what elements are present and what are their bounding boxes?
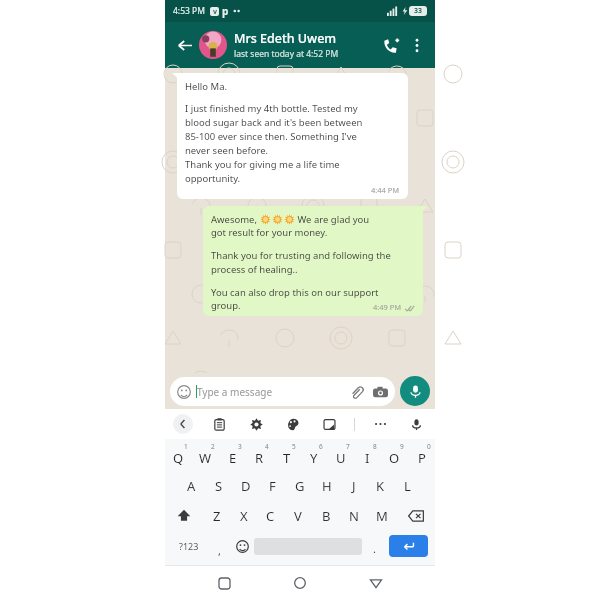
button[interactable]: Resize — [318, 413, 340, 435]
button[interactable]: N — [340, 501, 368, 531]
button[interactable]: Emoji — [230, 531, 254, 561]
button[interactable]: Enter — [389, 535, 428, 557]
button[interactable]: Hello Ma. — [177, 73, 408, 199]
button[interactable]: Call — [377, 31, 405, 59]
button[interactable]: C — [257, 501, 284, 531]
staticText: 1 — [184, 442, 188, 451]
staticText: Type a message — [197, 385, 273, 399]
button[interactable]: Back — [359, 566, 393, 600]
button[interactable]: E — [219, 441, 246, 471]
button[interactable]: L — [394, 471, 421, 501]
staticText: Mrs Edeth Uwem — [234, 30, 337, 47]
button[interactable]: U — [327, 441, 354, 471]
button[interactable]: X — [230, 501, 257, 531]
staticText: Y — [310, 449, 318, 467]
staticText: got result for your money. — [211, 226, 328, 239]
staticText: 2 — [211, 442, 215, 451]
button[interactable]: Mrs Edeth Uwem — [234, 30, 377, 60]
staticText: K — [376, 477, 385, 495]
button[interactable]: ?123 — [169, 531, 209, 561]
button[interactable]: More — [369, 413, 391, 435]
staticText: B — [322, 507, 331, 525]
staticText: Thank you for trusting and following the… — [211, 249, 391, 276]
button[interactable]: Attach — [348, 384, 364, 400]
staticText: N — [349, 507, 359, 525]
staticText: C — [266, 507, 275, 525]
staticText: W — [199, 449, 212, 467]
button[interactable]: Q — [165, 441, 192, 471]
button[interactable]: Settings — [245, 413, 267, 435]
button[interactable]: V — [284, 501, 312, 531]
staticText: 9 — [400, 442, 404, 451]
button[interactable]: S — [205, 471, 232, 501]
button[interactable]: F — [259, 471, 286, 501]
button[interactable]: M — [368, 501, 396, 531]
button[interactable]: Home — [283, 566, 317, 600]
button[interactable]: W — [192, 441, 219, 471]
button[interactable]: B — [312, 501, 340, 531]
button[interactable]: J — [340, 471, 367, 501]
button[interactable]: Voice input — [405, 413, 427, 435]
staticText: p — [222, 4, 229, 18]
staticText: Q — [173, 449, 184, 467]
button[interactable]: K — [367, 471, 394, 501]
staticText: E — [229, 449, 237, 467]
button[interactable]: R — [246, 441, 273, 471]
button[interactable]: A — [178, 471, 205, 501]
button[interactable]: Z — [203, 501, 230, 531]
button[interactable]: Backspace — [396, 501, 435, 531]
staticText: R — [255, 449, 264, 467]
staticText: I just finished my 4th bottle. Tested my… — [185, 102, 363, 185]
staticText: T — [283, 449, 291, 467]
button[interactable]: D — [232, 471, 259, 501]
button[interactable]: Camera — [372, 384, 388, 400]
staticText: Z — [213, 507, 221, 525]
button[interactable]: I — [354, 441, 381, 471]
button[interactable]: More options — [405, 33, 429, 57]
button[interactable]: Recents — [207, 566, 241, 600]
button[interactable]: Back — [171, 32, 197, 58]
staticText: 4:49 PM — [373, 302, 402, 312]
button[interactable]: , — [209, 531, 230, 561]
staticText: P — [418, 449, 426, 467]
staticText: v — [213, 7, 217, 16]
staticText: ?123 — [179, 540, 199, 552]
button[interactable]: . — [362, 531, 386, 561]
button[interactable]: H — [313, 471, 340, 501]
button[interactable]: O — [381, 441, 408, 471]
staticText: U — [336, 449, 346, 467]
button[interactable]: Type a message — [170, 377, 395, 406]
button[interactable]: Voice message — [400, 376, 430, 406]
button[interactable]: Back — [173, 414, 193, 434]
staticText: last seen today at 4:52 PM — [234, 48, 339, 60]
staticText: . — [373, 541, 376, 556]
staticText: 33 — [414, 6, 423, 16]
button[interactable]: Shift — [165, 501, 203, 531]
staticText: 4:44 PM — [371, 185, 400, 195]
staticText: I — [365, 449, 370, 467]
staticText: X — [240, 507, 248, 525]
staticText: M — [376, 507, 388, 525]
staticText: S — [215, 477, 223, 495]
staticText: 5 — [292, 442, 296, 451]
staticText: F — [269, 477, 276, 495]
staticText: , — [218, 543, 221, 558]
staticText: group. — [211, 299, 241, 312]
button[interactable]: G — [286, 471, 313, 501]
staticText: L — [404, 477, 411, 495]
staticText: 0 — [427, 442, 431, 451]
button[interactable]: Theme — [282, 413, 304, 435]
staticText: Hello Ma. — [185, 80, 228, 93]
staticText: 4 — [265, 442, 269, 451]
button[interactable]: Awesome, — [203, 206, 423, 316]
button[interactable]: T — [273, 441, 300, 471]
button[interactable]: P — [408, 441, 435, 471]
button[interactable]: Clipboard — [208, 413, 230, 435]
staticText: You can also drop this on our support — [211, 286, 379, 299]
staticText: 8 — [373, 442, 377, 451]
staticText: We are glad you — [295, 213, 370, 226]
button[interactable]: Y — [300, 441, 327, 471]
staticText: 6 — [319, 442, 323, 451]
staticText: V — [294, 507, 302, 525]
